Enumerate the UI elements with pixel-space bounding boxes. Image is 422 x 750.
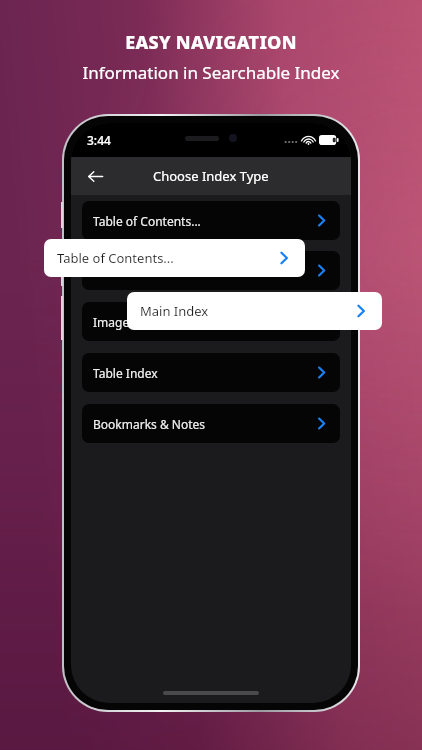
button[interactable]: Table of Contents... bbox=[44, 239, 305, 277]
staticText: Table of Contents... bbox=[57, 249, 174, 267]
staticText: Table Index bbox=[93, 365, 158, 381]
staticText: Main Index bbox=[93, 263, 156, 279]
button[interactable]: Table Index bbox=[82, 353, 340, 392]
staticText: Main Index bbox=[140, 302, 209, 320]
staticText: 3:44 bbox=[87, 132, 111, 148]
button[interactable]: Bookmarks & Notes bbox=[82, 404, 340, 443]
button[interactable]: Table of Contents... bbox=[82, 201, 340, 240]
button[interactable]: Image Index bbox=[82, 302, 340, 341]
staticText: EASY NAVIGATION bbox=[125, 30, 297, 55]
staticText: Image Index bbox=[93, 314, 165, 330]
staticText: Table of Contents... bbox=[93, 213, 201, 229]
button[interactable]: Main Index bbox=[127, 292, 382, 330]
button[interactable]: Main Index bbox=[82, 251, 340, 290]
staticText: Information in Searchable Index bbox=[82, 61, 340, 84]
staticText: Choose Index Type bbox=[153, 167, 269, 185]
button[interactable]: Back bbox=[77, 158, 113, 194]
staticText: Bookmarks & Notes bbox=[93, 416, 206, 432]
